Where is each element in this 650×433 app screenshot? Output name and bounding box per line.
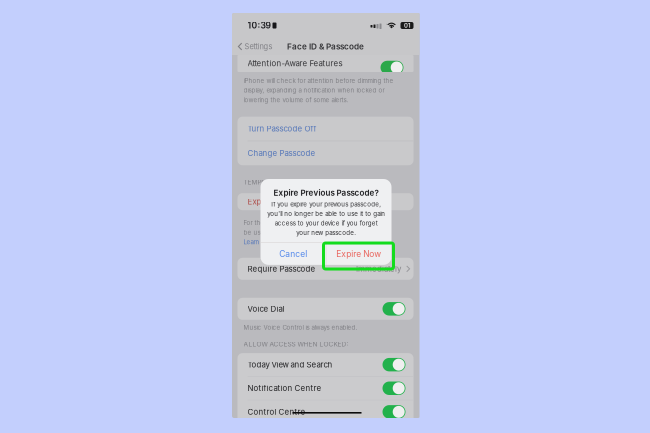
staticText: 10:39 <box>247 20 270 31</box>
staticText: Change Passcode <box>247 148 315 158</box>
button[interactable]: Cancel <box>261 243 326 265</box>
staticText: Face ID & Passcode <box>287 42 364 51</box>
button[interactable]: Turn Passcode Off <box>237 117 413 141</box>
staticText: Voice Dial <box>247 304 284 314</box>
staticText: Today View and Search <box>247 360 332 369</box>
staticText: Music Voice Control is always enabled. <box>243 324 357 331</box>
staticText: Expire Previous Passcode <box>247 197 343 206</box>
staticText: Notification Centre <box>247 383 321 393</box>
staticText: ALLOW ACCESS WHEN LOCKED: <box>243 340 348 348</box>
staticText: Immediately <box>356 264 401 274</box>
button[interactable]: Expire Now <box>326 243 391 265</box>
button[interactable]: Change Passcode <box>237 141 413 165</box>
staticText: For the next 72 hours your previous pass… <box>243 219 391 236</box>
button[interactable]: Learn more... <box>243 236 282 246</box>
button[interactable]: Expire Previous Passcode <box>237 193 413 210</box>
staticText: iPhone will check for attention before d… <box>243 77 393 104</box>
staticText: Control Centre <box>247 407 305 417</box>
staticText: TEMPORARILY DISABLE <box>243 178 318 186</box>
staticText: Learn more... <box>243 238 282 246</box>
button[interactable]: Require Passcode <box>237 258 413 280</box>
staticText: Expire Previous Passcode? <box>273 188 378 198</box>
staticText: Expire Now <box>336 249 381 259</box>
staticText: Settings <box>244 42 272 51</box>
staticText: Cancel <box>279 249 307 259</box>
button[interactable]: Control Centre <box>237 400 413 423</box>
button[interactable]: Notification Centre <box>237 377 413 400</box>
button[interactable]: Settings <box>231 39 272 54</box>
staticText: Require Passcode <box>247 264 315 274</box>
button[interactable]: Today View and Search <box>237 353 413 376</box>
staticText: Attention-Aware Features <box>247 59 342 68</box>
staticText: If you expire your previous passcode, yo… <box>267 201 385 236</box>
staticText: Turn Passcode Off <box>247 124 316 133</box>
staticText: 01 <box>404 22 410 29</box>
